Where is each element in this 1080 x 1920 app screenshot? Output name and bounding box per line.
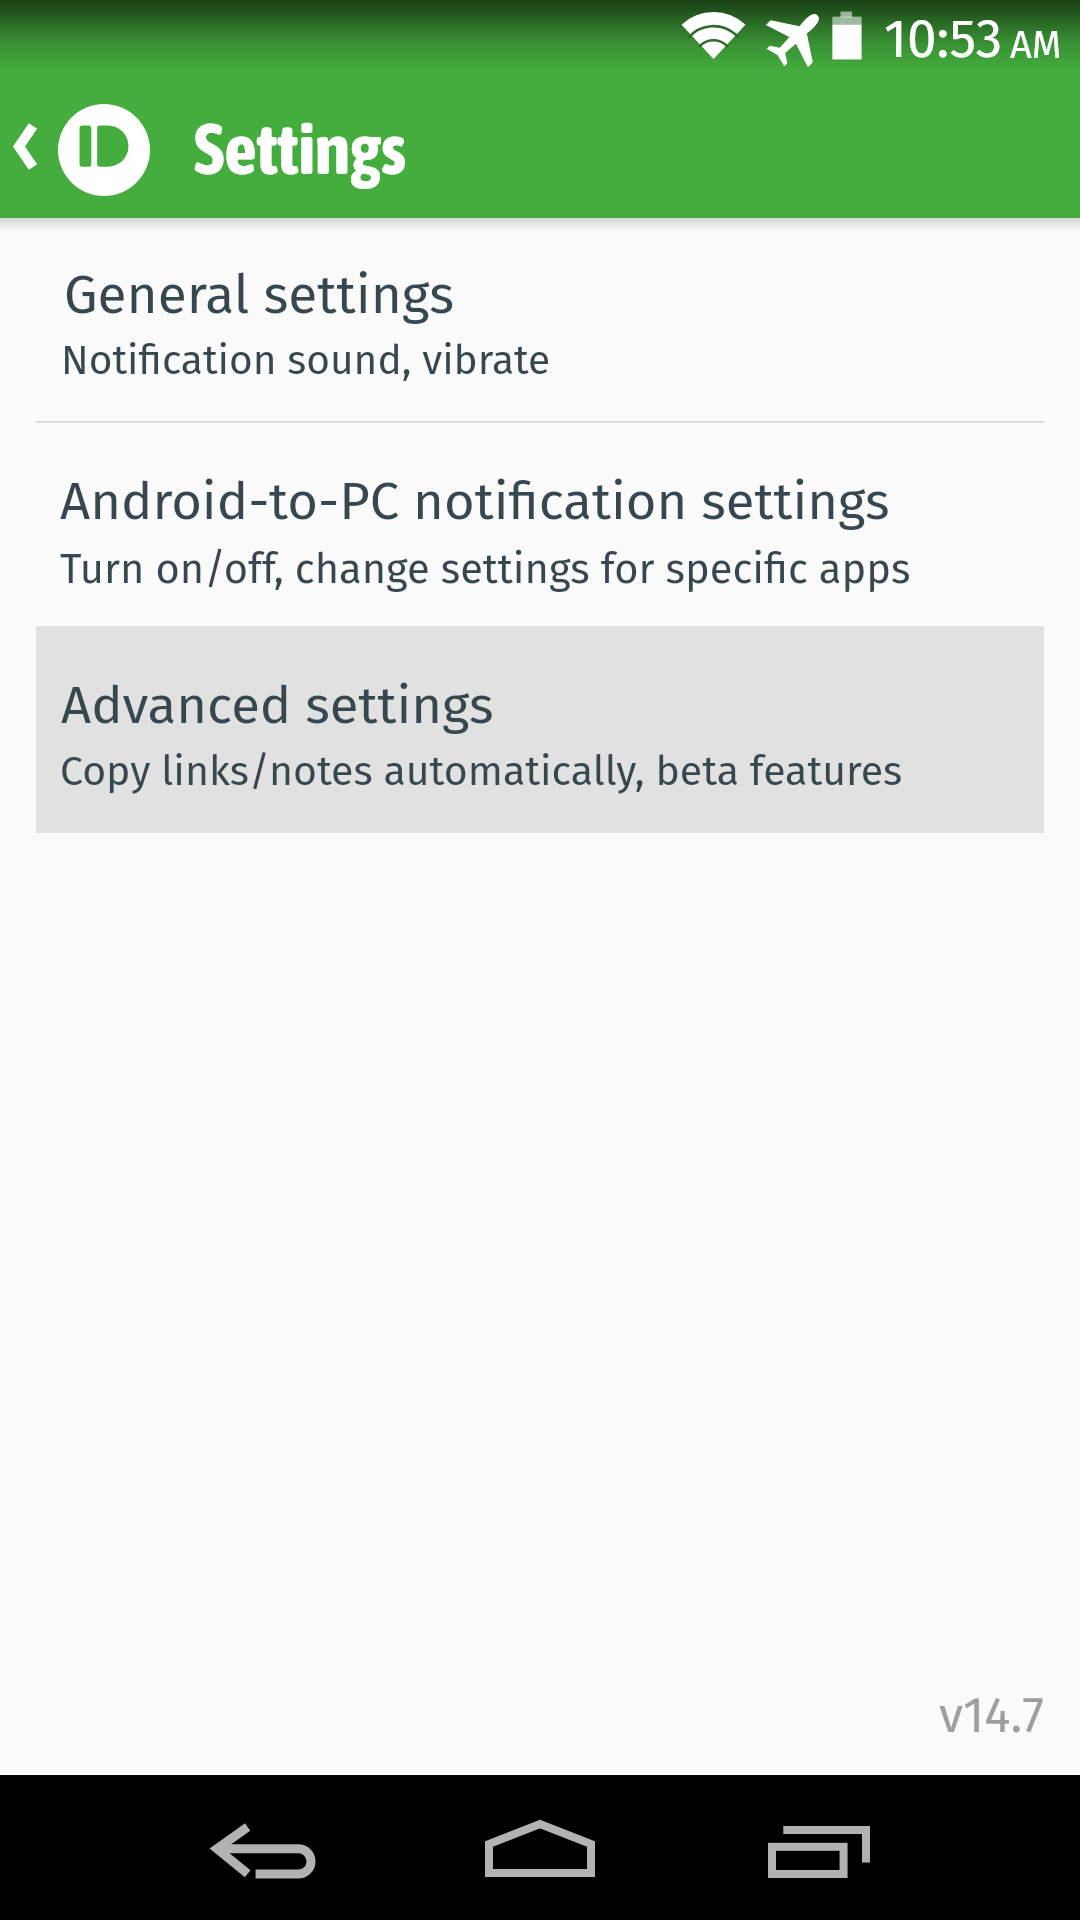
button[interactable]: Back: [204, 1775, 324, 1920]
staticText: AM: [1010, 22, 1062, 68]
button[interactable]: Home: [480, 1775, 610, 1920]
staticText: v14.7: [939, 1686, 1044, 1745]
staticText: Turn on/off, change settings for specifi…: [60, 544, 911, 594]
staticText: Android-to-PC notification settings: [60, 470, 890, 533]
button[interactable]: Back: [0, 96, 56, 206]
staticText: 10:53: [884, 7, 1003, 71]
button[interactable]: Recents: [758, 1775, 888, 1920]
button[interactable]: [0, 228, 1080, 420]
button[interactable]: [0, 430, 1080, 622]
staticText: Copy links/notes automatically, beta fea…: [60, 747, 903, 796]
staticText: General settings: [64, 263, 454, 327]
staticText: Settings: [194, 107, 407, 190]
staticText: Notification sound, vibrate: [61, 336, 551, 385]
staticText: Advanced settings: [61, 674, 494, 737]
button[interactable]: [36, 626, 1044, 833]
